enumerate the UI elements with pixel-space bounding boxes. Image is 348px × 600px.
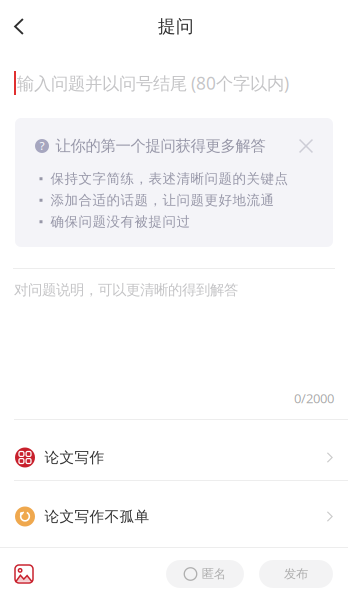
button[interactable]: Back [0, 0, 46, 53]
staticText: 论文写作 [44, 448, 104, 467]
button[interactable]: 匿名 [166, 560, 244, 588]
button[interactable]: Add image [0, 548, 48, 600]
staticText: 发布 [284, 566, 308, 582]
button[interactable]: 发布 [259, 560, 333, 588]
staticText: 输入问题并以问号结尾 (80个字以内) [17, 71, 289, 95]
button[interactable]: 论文写作不孤单 [0, 481, 348, 547]
button[interactable]: 论文写作 [0, 420, 348, 480]
staticText: ? [39, 138, 44, 153]
staticText: 论文写作不孤单 [44, 507, 149, 526]
staticText: 对问题说明，可以更清晰的得到解答 [14, 281, 238, 299]
staticText: 0/2000 [294, 389, 334, 407]
staticText: 添加合适的话题，让问题更好地流通 [50, 192, 274, 209]
staticText: 匿名 [202, 566, 226, 582]
staticText: 确保问题没有被提问过 [50, 213, 190, 230]
staticText: 提问 [158, 15, 194, 38]
button[interactable]: Close tips [295, 135, 317, 157]
staticText: 保持文字简练，表述清晰问题的关键点 [50, 170, 288, 187]
staticText: 让你的第一个提问获得更多解答 [55, 136, 265, 156]
